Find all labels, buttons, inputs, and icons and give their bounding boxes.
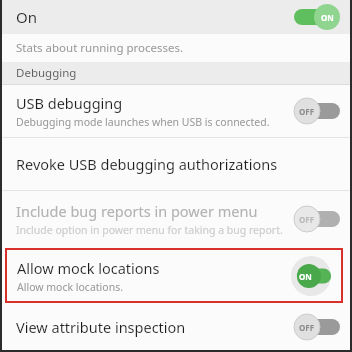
button[interactable]: Allow mock locations (5, 248, 343, 303)
staticText: USB debugging (16, 93, 123, 113)
staticText: Debugging mode launches when USB is conn… (16, 115, 270, 129)
button[interactable]: On (2, 0, 350, 34)
staticText: Include option in power menu for taking … (16, 223, 283, 237)
other: Allow mock locations toggle (285, 256, 337, 296)
staticText: Revoke USB debugging authorizations (16, 154, 278, 174)
staticText: Debugging (16, 65, 77, 81)
button[interactable]: View attribute inspection (2, 304, 350, 350)
other: View attribute inspection toggle (294, 314, 340, 340)
staticText: OFF (299, 214, 315, 225)
staticText: Allow mock locations (17, 258, 160, 278)
staticText: OFF (299, 322, 315, 333)
other: On toggle (294, 4, 340, 30)
staticText: Include bug reports in power menu (16, 201, 258, 221)
button[interactable]: Include bug reports in power menu (2, 191, 350, 247)
button[interactable]: USB debugging (2, 85, 350, 137)
staticText: OFF (299, 106, 315, 117)
staticText: Stats about running processes. (16, 40, 184, 56)
staticText: View attribute inspection (16, 317, 294, 337)
staticText: Allow mock locations. (17, 280, 123, 294)
button[interactable]: Revoke USB debugging authorizations (2, 138, 350, 190)
other: USB debugging toggle (294, 98, 340, 124)
staticText: ON (321, 12, 334, 23)
other: Include bug reports toggle (294, 206, 340, 232)
staticText: ON (299, 271, 312, 282)
staticText: On (16, 7, 37, 27)
